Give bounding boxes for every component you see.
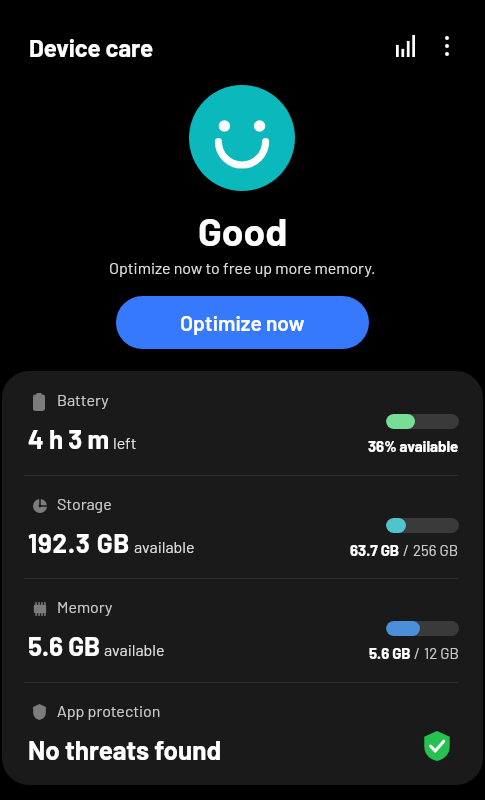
staticText: Memory bbox=[57, 597, 113, 616]
button[interactable]: Memory bbox=[2, 578, 483, 681]
button[interactable]: Usage statistics bbox=[383, 24, 427, 68]
staticText: available bbox=[134, 537, 195, 556]
staticText: Storage bbox=[57, 494, 112, 513]
staticText: / bbox=[400, 541, 413, 559]
staticText: Device care bbox=[29, 33, 154, 62]
staticText: 4 h 3 m bbox=[28, 423, 110, 454]
staticText: available bbox=[104, 640, 165, 659]
button[interactable]: More options bbox=[425, 24, 469, 68]
staticText: Battery bbox=[57, 390, 109, 409]
staticText: 12 GB bbox=[424, 644, 459, 662]
staticText: / bbox=[411, 644, 424, 662]
staticText: No threats found bbox=[28, 734, 222, 765]
staticText: 5.6 GB bbox=[369, 644, 411, 662]
staticText: 192.3 GB bbox=[28, 527, 131, 558]
staticText: App protection bbox=[57, 701, 161, 720]
button[interactable]: Storage bbox=[2, 475, 483, 578]
staticText: 256 GB bbox=[413, 541, 459, 559]
staticText: 5.6 GB bbox=[28, 630, 101, 661]
staticText: Good bbox=[198, 207, 288, 254]
staticText: Optimize now bbox=[180, 310, 305, 335]
staticText: 36% available bbox=[368, 437, 459, 455]
staticText: 63.7 GB bbox=[350, 541, 400, 559]
button[interactable]: Optimize now bbox=[116, 296, 369, 349]
button[interactable]: App protection bbox=[2, 682, 483, 785]
staticText: Optimize now to free up more memory. bbox=[109, 258, 376, 277]
button[interactable]: Battery bbox=[2, 371, 483, 474]
staticText: left bbox=[113, 433, 137, 452]
